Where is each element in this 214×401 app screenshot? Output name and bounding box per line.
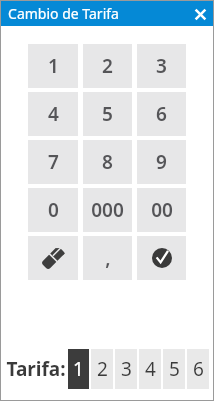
button[interactable]: Erase [28, 236, 78, 280]
button[interactable]: Accept [137, 236, 186, 280]
staticText: 6 [156, 101, 167, 127]
button[interactable]: 2 [91, 349, 113, 389]
button[interactable]: 3 [137, 44, 186, 88]
button[interactable]: 6 [187, 349, 209, 389]
button[interactable]: 1 [28, 44, 78, 88]
staticText: 1 [48, 53, 59, 79]
staticText: 2 [102, 53, 113, 79]
staticText: 3 [121, 356, 132, 382]
button[interactable]: 0 [28, 188, 78, 232]
staticText: 00 [151, 197, 173, 223]
staticText: 9 [156, 149, 167, 175]
staticText: 4 [145, 356, 156, 382]
staticText: , [105, 245, 111, 271]
staticText: 5 [169, 356, 180, 382]
button[interactable]: 5 [163, 349, 185, 389]
staticText: 7 [48, 149, 59, 175]
button[interactable]: 4 [139, 349, 161, 389]
button[interactable]: 4 [28, 92, 78, 136]
button[interactable]: Comma [83, 236, 132, 280]
staticText: 1 [73, 356, 84, 382]
button[interactable]: 2 [83, 44, 132, 88]
button[interactable]: 7 [28, 140, 78, 184]
staticText: 0 [48, 197, 59, 223]
staticText: 5 [102, 101, 113, 127]
button[interactable]: 3 [115, 349, 137, 389]
staticText: 6 [193, 356, 204, 382]
staticText: 000 [91, 197, 124, 223]
button[interactable]: 000 [83, 188, 132, 232]
button[interactable]: Close [189, 2, 211, 24]
staticText: 3 [156, 53, 167, 79]
staticText: Cambio de Tarifa [8, 4, 119, 23]
staticText: Tarifa: [6, 356, 66, 382]
button[interactable]: 00 [137, 188, 186, 232]
button[interactable]: 1 [68, 349, 89, 389]
button[interactable]: 8 [83, 140, 132, 184]
button[interactable]: 9 [137, 140, 186, 184]
staticText: 8 [102, 149, 113, 175]
button[interactable]: 6 [137, 92, 186, 136]
button[interactable]: 5 [83, 92, 132, 136]
staticText: 2 [97, 356, 108, 382]
staticText: 4 [48, 101, 59, 127]
